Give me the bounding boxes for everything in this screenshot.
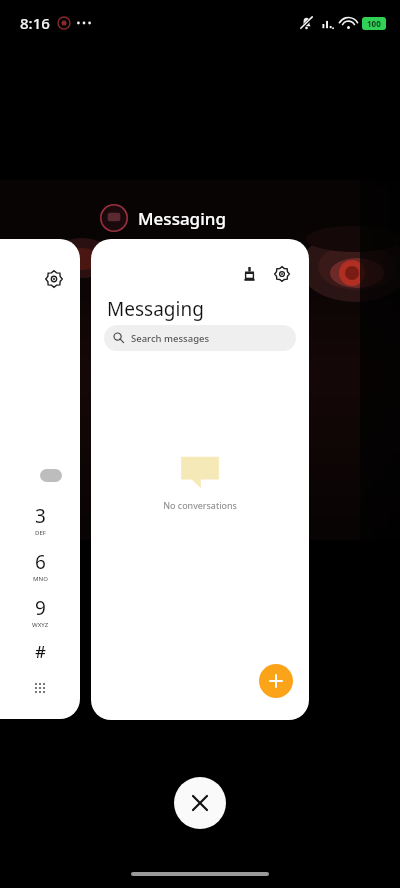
button[interactable]: Messaging <box>100 204 226 232</box>
button[interactable]: Backspace <box>40 469 62 482</box>
staticText: Messaging <box>107 296 204 322</box>
button[interactable]: Keypad <box>0 678 80 698</box>
button[interactable]: Settings <box>269 261 295 287</box>
button[interactable]: Themes <box>91 239 309 720</box>
staticText: No conversations <box>163 499 237 511</box>
staticText: MNO <box>33 575 48 583</box>
button[interactable]: Clear all <box>174 777 226 829</box>
staticText: 9 <box>35 595 46 621</box>
staticText: 100 <box>367 18 381 29</box>
button[interactable]: 6 <box>0 548 80 584</box>
staticText: Messaging <box>138 207 226 230</box>
staticText: 6 <box>35 549 46 575</box>
staticText: 8:16 <box>20 13 50 33</box>
staticText: # <box>35 640 46 662</box>
staticText: Search messages <box>131 332 210 345</box>
button[interactable]: Themes <box>236 261 262 287</box>
button[interactable]: Settings <box>0 239 80 719</box>
staticText: WXYZ <box>32 621 49 629</box>
button[interactable]: 9 <box>0 594 80 630</box>
button[interactable]: 3 <box>0 502 80 538</box>
staticText: 3 <box>35 503 46 529</box>
button[interactable]: # <box>0 640 80 662</box>
staticText: DEF <box>35 529 46 537</box>
button[interactable]: Search messages <box>104 325 296 351</box>
button[interactable]: Settings <box>42 267 66 291</box>
button[interactable]: New conversation <box>259 664 293 698</box>
